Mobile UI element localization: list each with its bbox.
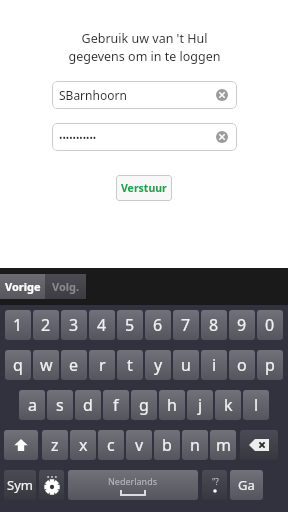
button[interactable]: Sym xyxy=(4,470,36,500)
button[interactable]: Input settings xyxy=(39,470,64,500)
staticText: 4 xyxy=(97,314,107,336)
staticText: 3 xyxy=(69,314,79,336)
button[interactable]: z xyxy=(42,430,68,460)
staticText: o xyxy=(237,354,247,376)
button[interactable]: "? xyxy=(202,470,227,500)
button[interactable]: Clear xyxy=(216,131,228,143)
button[interactable]: Backspace xyxy=(240,430,278,460)
button[interactable]: s xyxy=(47,390,73,420)
staticText: v xyxy=(135,434,144,456)
staticText: z xyxy=(51,434,59,456)
button[interactable]: j xyxy=(187,390,213,420)
button[interactable]: e xyxy=(61,350,87,380)
staticText: 2 xyxy=(41,314,51,336)
button[interactable]: w xyxy=(33,350,59,380)
staticText: c xyxy=(107,434,115,456)
button[interactable]: 2 xyxy=(33,310,59,340)
button[interactable]: 0 xyxy=(257,310,283,340)
button[interactable]: ••••••••••• xyxy=(52,123,237,151)
staticText: f xyxy=(113,394,119,416)
staticText: 8 xyxy=(209,314,219,336)
button[interactable]: Volg. xyxy=(45,274,86,299)
staticText: k xyxy=(224,394,233,416)
staticText: Sym xyxy=(7,476,33,494)
staticText: h xyxy=(167,394,177,416)
button[interactable]: 6 xyxy=(145,310,171,340)
staticText: Verstuur xyxy=(121,181,167,195)
button[interactable]: SBarnhoorn xyxy=(52,81,237,109)
button[interactable]: 8 xyxy=(201,310,227,340)
staticText: 5 xyxy=(125,314,135,336)
staticText: y xyxy=(154,354,163,376)
button[interactable]: f xyxy=(103,390,129,420)
staticText: d xyxy=(83,394,93,416)
staticText: r xyxy=(99,354,106,376)
staticText: Vorige xyxy=(5,279,41,294)
staticText: "? xyxy=(212,476,219,487)
staticText: Ga xyxy=(238,476,255,494)
button[interactable]: i xyxy=(201,350,227,380)
button[interactable]: 5 xyxy=(117,310,143,340)
button[interactable]: q xyxy=(5,350,31,380)
staticText: i xyxy=(212,354,217,376)
staticText: 0 xyxy=(265,314,275,336)
button[interactable]: a xyxy=(19,390,45,420)
staticText: p xyxy=(265,354,275,376)
staticText: m xyxy=(216,434,231,456)
staticText: 6 xyxy=(153,314,163,336)
staticText: t xyxy=(127,354,133,376)
button[interactable]: Ga xyxy=(230,470,263,500)
staticText: w xyxy=(40,354,53,376)
button[interactable]: h xyxy=(159,390,185,420)
button[interactable]: 1 xyxy=(5,310,31,340)
staticText: g xyxy=(139,394,149,416)
staticText: Nederlands xyxy=(108,475,158,487)
staticText: 7 xyxy=(181,314,191,336)
button[interactable]: u xyxy=(173,350,199,380)
button[interactable]: Space xyxy=(68,470,198,500)
staticText: j xyxy=(198,394,203,416)
button[interactable]: l xyxy=(243,390,269,420)
staticText: b xyxy=(162,434,172,456)
button[interactable]: 3 xyxy=(61,310,87,340)
staticText: s xyxy=(56,394,64,416)
staticText: 9 xyxy=(237,314,247,336)
button[interactable]: 9 xyxy=(229,310,255,340)
staticText: 1 xyxy=(13,314,23,336)
button[interactable]: Vorige xyxy=(0,274,45,299)
button[interactable]: g xyxy=(131,390,157,420)
button[interactable]: p xyxy=(257,350,283,380)
staticText: x xyxy=(79,434,88,456)
staticText: a xyxy=(28,394,37,416)
staticText: u xyxy=(181,354,191,376)
button[interactable]: r xyxy=(89,350,115,380)
button[interactable]: o xyxy=(229,350,255,380)
button[interactable]: Clear xyxy=(216,89,228,101)
staticText: q xyxy=(13,354,23,376)
button[interactable]: x xyxy=(70,430,96,460)
button[interactable]: 7 xyxy=(173,310,199,340)
button[interactable]: t xyxy=(117,350,143,380)
button[interactable]: m xyxy=(210,430,236,460)
button[interactable]: Shift xyxy=(4,430,38,460)
staticText: SBarnhoorn xyxy=(59,87,127,103)
button[interactable]: 4 xyxy=(89,310,115,340)
staticText: e xyxy=(69,354,79,376)
button[interactable]: b xyxy=(154,430,180,460)
button[interactable]: v xyxy=(126,430,152,460)
button[interactable]: d xyxy=(75,390,101,420)
button[interactable]: n xyxy=(182,430,208,460)
staticText: Volg. xyxy=(52,279,80,294)
staticText: n xyxy=(190,434,200,456)
staticText: l xyxy=(254,394,259,416)
staticText: ••••••••••• xyxy=(59,131,97,143)
button[interactable]: c xyxy=(98,430,124,460)
button[interactable]: k xyxy=(215,390,241,420)
button[interactable]: y xyxy=(145,350,171,380)
button[interactable]: Verstuur xyxy=(116,175,172,201)
staticText: Gebruik uw van 't Hul gegevens om in te … xyxy=(68,30,221,65)
